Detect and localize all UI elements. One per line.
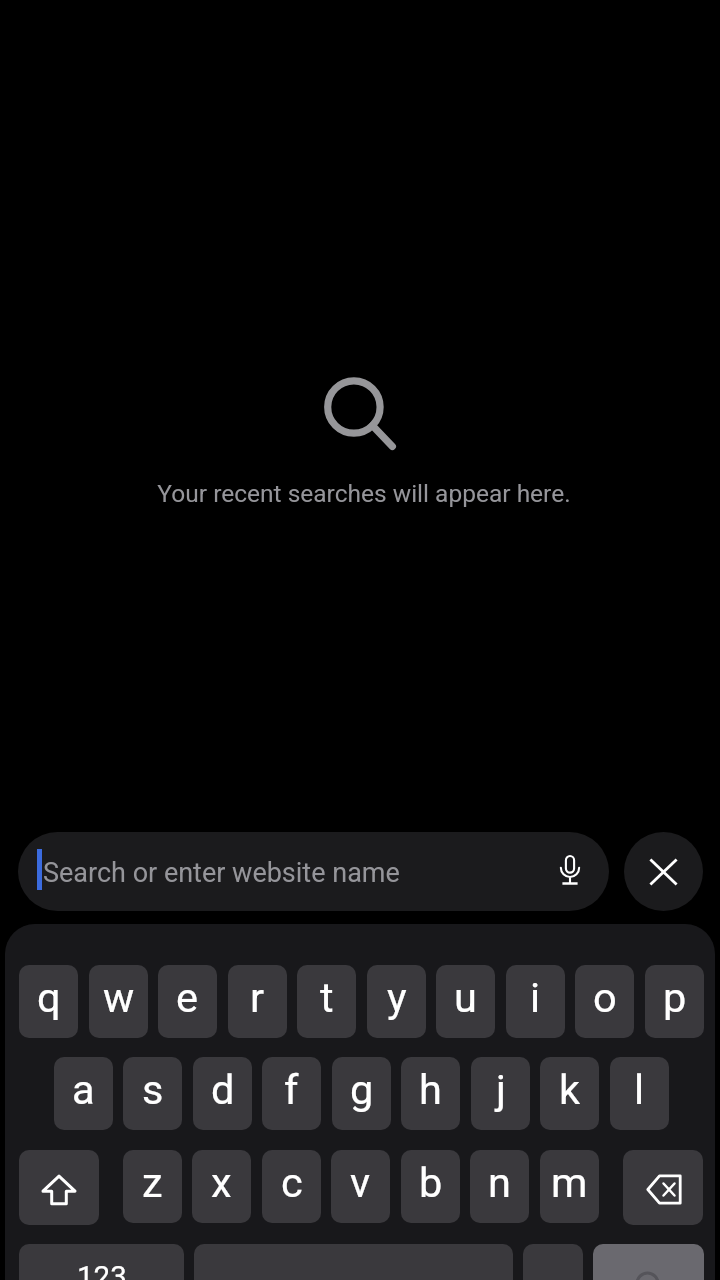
button[interactable]: e (158, 965, 217, 1038)
button[interactable]: j (471, 1057, 530, 1130)
staticText: Your recent searches will appear here. (157, 479, 571, 508)
button[interactable]: Voice search (540, 840, 600, 900)
staticText: k (559, 1065, 581, 1114)
button[interactable]: m (540, 1150, 599, 1223)
staticText: r (250, 973, 265, 1022)
staticText: q (37, 973, 61, 1022)
staticText: g (350, 1065, 374, 1114)
button[interactable]: i (506, 965, 565, 1038)
button[interactable]: z (123, 1150, 182, 1223)
button[interactable]: r (228, 965, 287, 1038)
button[interactable]: Backspace (623, 1150, 703, 1225)
staticText: x (211, 1158, 232, 1207)
staticText: h (419, 1065, 442, 1114)
staticText: d (211, 1065, 235, 1114)
staticText: p (663, 973, 687, 1022)
staticText: t (320, 973, 334, 1022)
staticText: f (284, 1065, 299, 1114)
staticText: j (496, 1065, 506, 1114)
staticText: o (593, 973, 617, 1022)
staticText: a (72, 1065, 95, 1114)
staticText: 123 (77, 1260, 127, 1280)
button[interactable]: p (645, 965, 704, 1038)
button[interactable]: y (367, 965, 426, 1038)
button[interactable]: o (575, 965, 634, 1038)
staticText: s (142, 1065, 164, 1114)
button[interactable]: 123 (19, 1244, 184, 1280)
button[interactable]: w (89, 965, 148, 1038)
button[interactable]: b (401, 1150, 460, 1223)
staticText: y (387, 973, 407, 1022)
staticText: Search or enter website name (43, 857, 400, 889)
button[interactable]: u (436, 965, 495, 1038)
button[interactable]: l (610, 1057, 669, 1130)
button[interactable]: Shift (19, 1150, 99, 1225)
staticText: m (551, 1158, 588, 1207)
button[interactable]: h (401, 1057, 460, 1130)
staticText: z (142, 1158, 163, 1207)
button[interactable]: Go (593, 1244, 704, 1280)
staticText: v (350, 1158, 371, 1207)
staticText: c (281, 1158, 303, 1207)
button[interactable]: Search or enter website name (18, 832, 609, 911)
button[interactable]: a (54, 1057, 113, 1130)
staticText: e (176, 973, 199, 1022)
button[interactable]: c (262, 1150, 321, 1223)
button[interactable]: f (262, 1057, 321, 1130)
staticText: l (634, 1065, 645, 1114)
button[interactable]: n (470, 1150, 529, 1223)
staticText: w (103, 973, 135, 1022)
button[interactable]: k (540, 1057, 599, 1130)
button[interactable]: d (193, 1057, 252, 1130)
button[interactable]: g (332, 1057, 391, 1130)
button[interactable]: . (523, 1244, 583, 1280)
button[interactable]: t (297, 965, 356, 1038)
button[interactable]: s (123, 1057, 182, 1130)
button[interactable]: x (192, 1150, 251, 1223)
staticText: b (419, 1158, 443, 1207)
button[interactable]: q (19, 965, 78, 1038)
button[interactable]: Close (624, 832, 703, 911)
staticText: u (454, 973, 477, 1022)
staticText: i (530, 973, 541, 1022)
staticText: n (488, 1158, 511, 1207)
button[interactable]: v (331, 1150, 390, 1223)
